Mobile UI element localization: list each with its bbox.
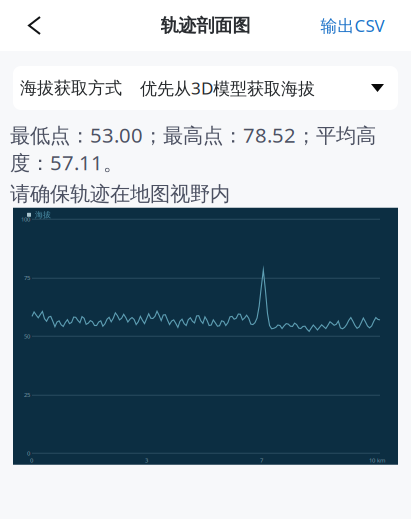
staticText: 10 km — [369, 456, 385, 464]
button[interactable]: 输出CSV — [294, 0, 411, 51]
button[interactable]: 返回 — [0, 0, 69, 51]
staticText: 7 — [260, 456, 263, 464]
staticText: 50 — [24, 332, 30, 340]
staticText: 0 — [27, 449, 30, 457]
staticText: 0 — [30, 456, 33, 464]
staticText: 海拔获取方式 — [20, 77, 122, 99]
staticText: 100 — [21, 215, 30, 223]
staticText: 3 — [145, 456, 148, 464]
staticText: 海拔 — [35, 210, 51, 220]
staticText: 25 — [24, 391, 30, 399]
staticText: 请确保轨迹在地图视野内 — [10, 181, 230, 207]
staticText: 轨迹剖面图 — [160, 14, 250, 37]
staticText: 75 — [24, 274, 30, 282]
staticText: 优先从3D模型获取海拔 — [140, 76, 315, 100]
staticText: 输出CSV — [320, 14, 384, 37]
button[interactable]: 海拔获取方式 — [13, 66, 398, 110]
staticText: 最低点：53.00；最高点：78.52；平均高度：57.11。 — [10, 121, 376, 176]
